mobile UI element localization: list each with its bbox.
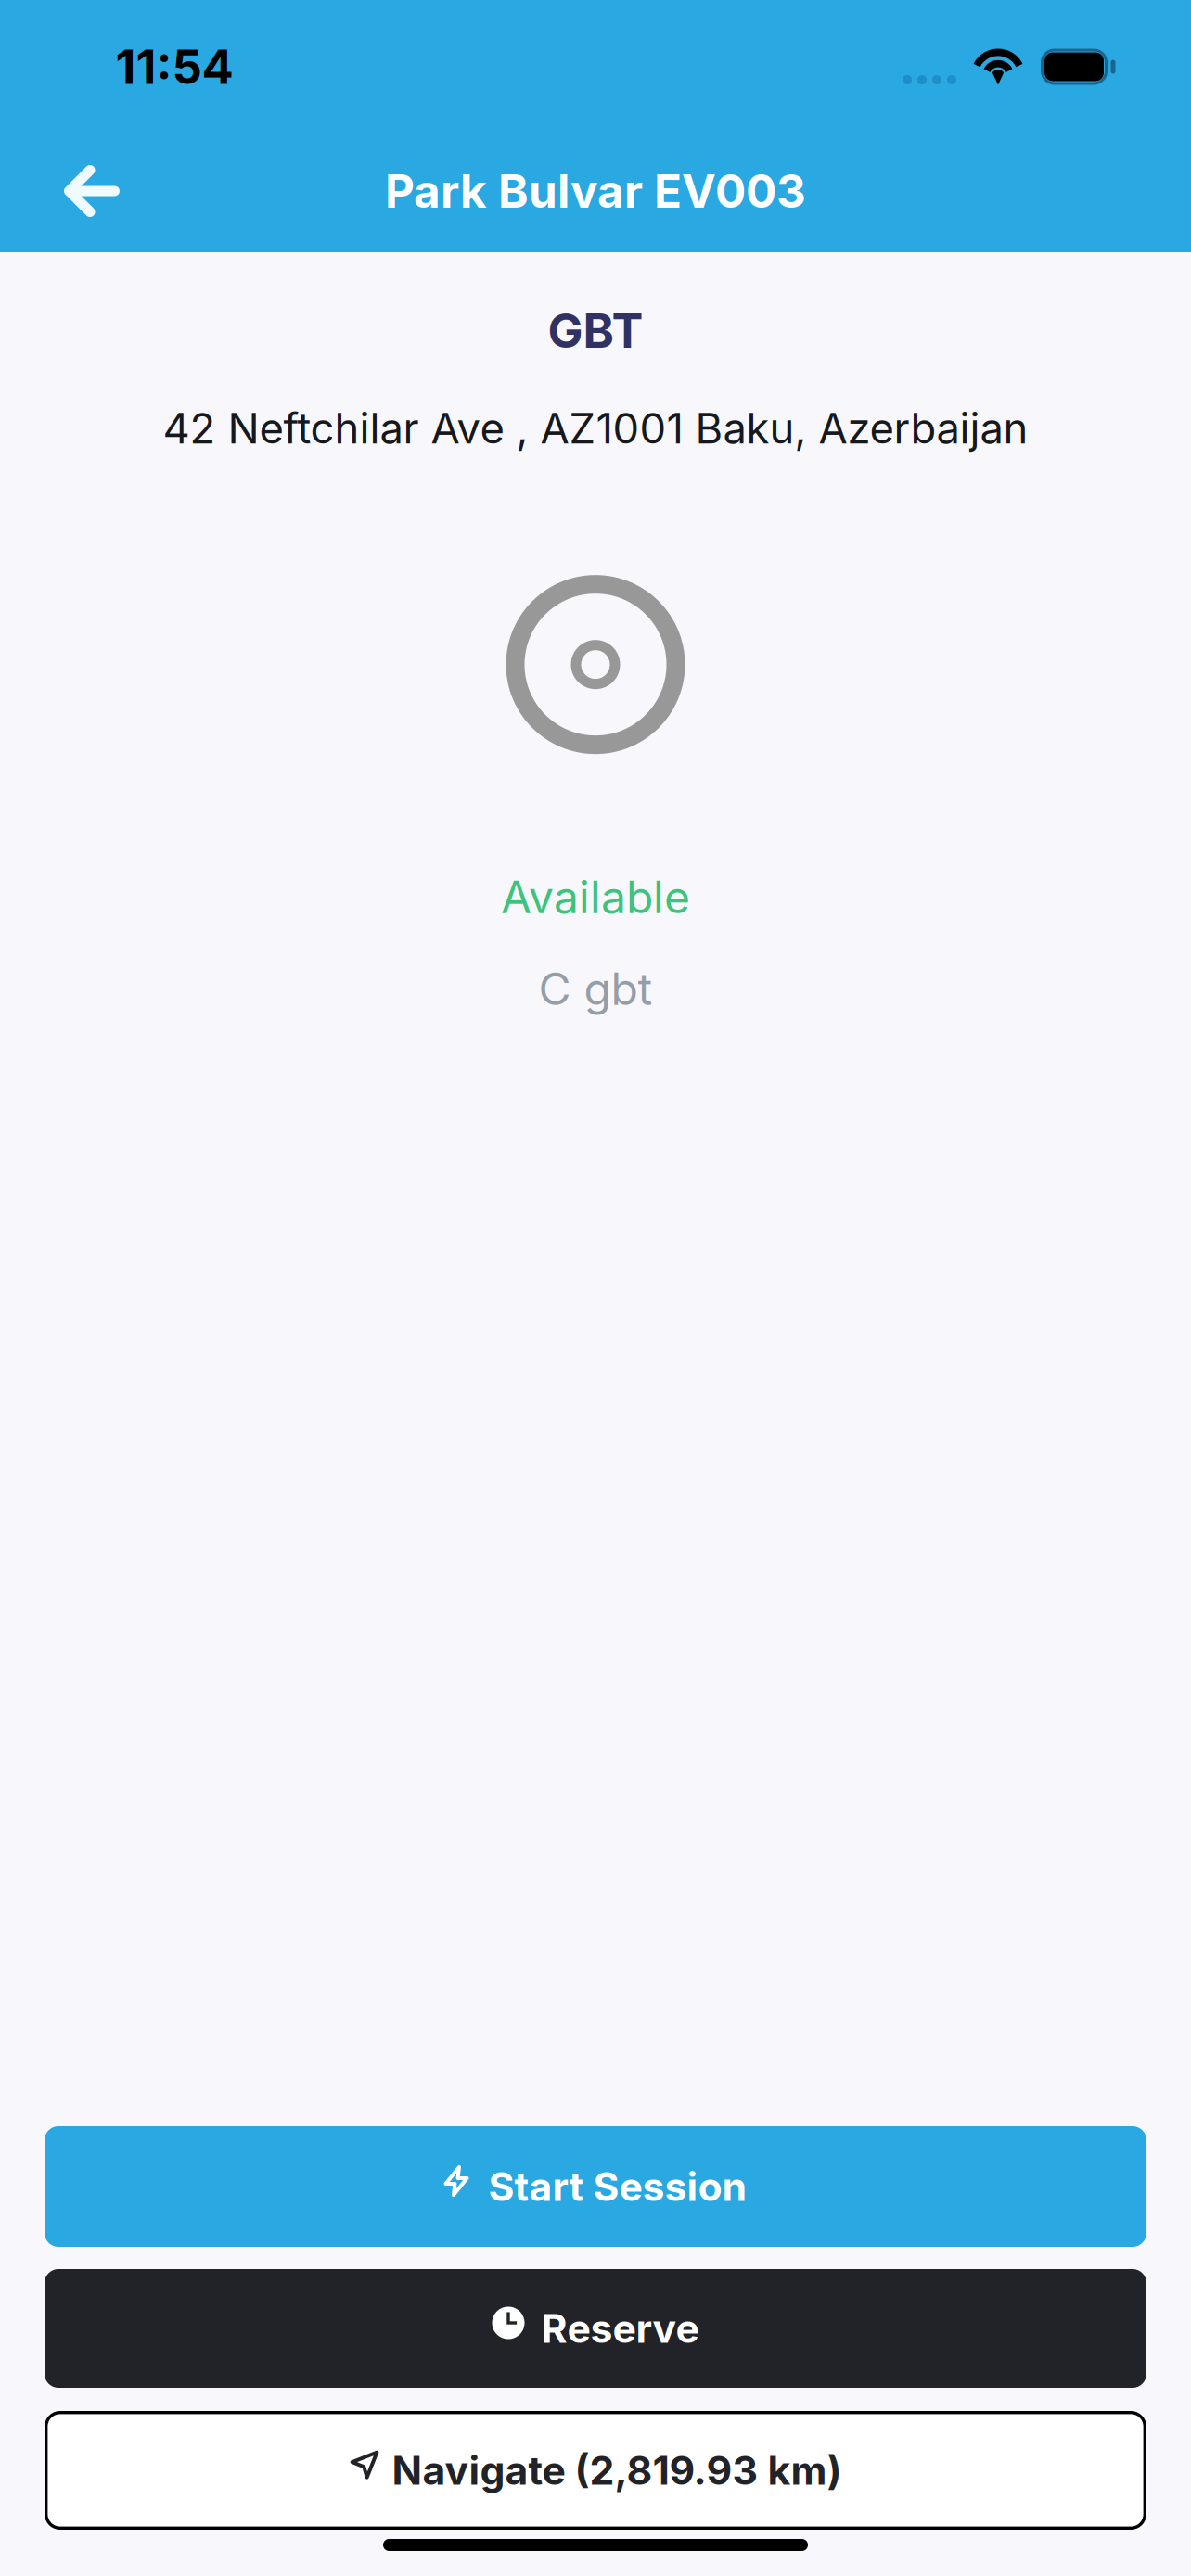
staticText: Available [501, 870, 690, 924]
button[interactable]: Back [32, 141, 151, 241]
staticText: 42 Neftchilar Ave , AZ1001 Baku, Azerbai… [163, 403, 1028, 454]
button[interactable]: Start Session [45, 2126, 1146, 2247]
button[interactable]: Navigate (2,819.93 km) [45, 2411, 1146, 2530]
button[interactable]: Reserve [45, 2269, 1146, 2388]
staticText: 11:54 [115, 38, 233, 95]
staticText: Reserve [541, 2304, 699, 2352]
staticText: Navigate (2,819.93 km) [392, 2446, 842, 2494]
staticText: GBT [548, 302, 643, 359]
staticText: C gbt [538, 962, 653, 1016]
staticText: Start Session [488, 2163, 747, 2210]
staticText: Park Bulvar EV003 [385, 163, 806, 219]
